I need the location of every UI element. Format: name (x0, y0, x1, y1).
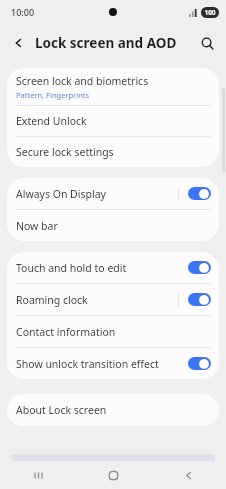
button[interactable]: Secure lock settings (7, 137, 219, 167)
button[interactable]: Toggle (188, 293, 211, 306)
button[interactable]: Contact information (7, 316, 219, 347)
staticText: Screen lock and biometrics (16, 74, 149, 88)
staticText: Now bar (16, 219, 58, 233)
staticText: 100 (204, 8, 216, 17)
button[interactable]: Extend Unlock (7, 106, 219, 136)
button[interactable]: Recents (0, 461, 76, 489)
staticText: Always On Display (16, 187, 106, 201)
button[interactable]: About Lock screen (7, 394, 219, 426)
button[interactable]: Screen lock and biometrics (7, 68, 219, 105)
staticText: About Lock screen (16, 403, 107, 417)
button[interactable]: Back (151, 461, 226, 489)
button[interactable]: Roaming clock (7, 284, 219, 315)
staticText: Show unlock transition effect (16, 357, 159, 371)
staticText: Lock screen and AOD (35, 34, 177, 52)
staticText: Touch and hold to edit (16, 261, 127, 275)
button[interactable]: Touch and hold to edit (7, 252, 219, 283)
button[interactable]: Home (76, 461, 151, 489)
button[interactable]: Toggle (188, 357, 211, 370)
button[interactable]: Always On Display (7, 178, 219, 209)
staticText: Pattern, Fingerprints (16, 90, 90, 100)
staticText: Contact information (16, 325, 116, 339)
staticText: 10:00 (11, 6, 35, 18)
button[interactable]: Now bar (7, 210, 219, 241)
staticText: Secure lock settings (16, 145, 114, 159)
button[interactable]: Back (6, 30, 32, 56)
staticText: Extend Unlock (16, 114, 87, 128)
button[interactable]: Show unlock transition effect (7, 348, 219, 379)
button[interactable]: Toggle (188, 187, 211, 200)
button[interactable]: Toggle (188, 261, 211, 274)
button[interactable]: Search (194, 30, 220, 56)
staticText: Roaming clock (16, 293, 88, 307)
